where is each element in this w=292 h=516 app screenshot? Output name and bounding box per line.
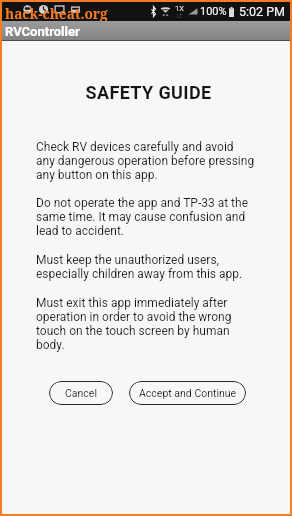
staticText: Do not operate the app and TP-33 at the … <box>36 196 255 238</box>
staticText: Must exit this app immediately after ope… <box>36 296 255 352</box>
staticText: Accept and Continue <box>139 387 237 399</box>
staticText: 100% <box>200 5 227 18</box>
button[interactable]: Accept and Continue <box>129 381 246 405</box>
staticText: Check RV devices carefully and avoid any… <box>36 140 255 182</box>
staticText: hack-cheat.org <box>5 4 108 23</box>
staticText: Cancel <box>65 387 97 399</box>
staticText: 5:02 PM <box>239 4 286 19</box>
button[interactable]: Cancel <box>49 381 113 405</box>
staticText: SAFETY GUIDE <box>42 82 255 103</box>
staticText: Must keep the unauthorized users, especi… <box>36 253 255 281</box>
staticText: RVController <box>5 24 80 39</box>
staticText: 1X <box>175 4 184 13</box>
staticText: LT <box>177 13 183 19</box>
